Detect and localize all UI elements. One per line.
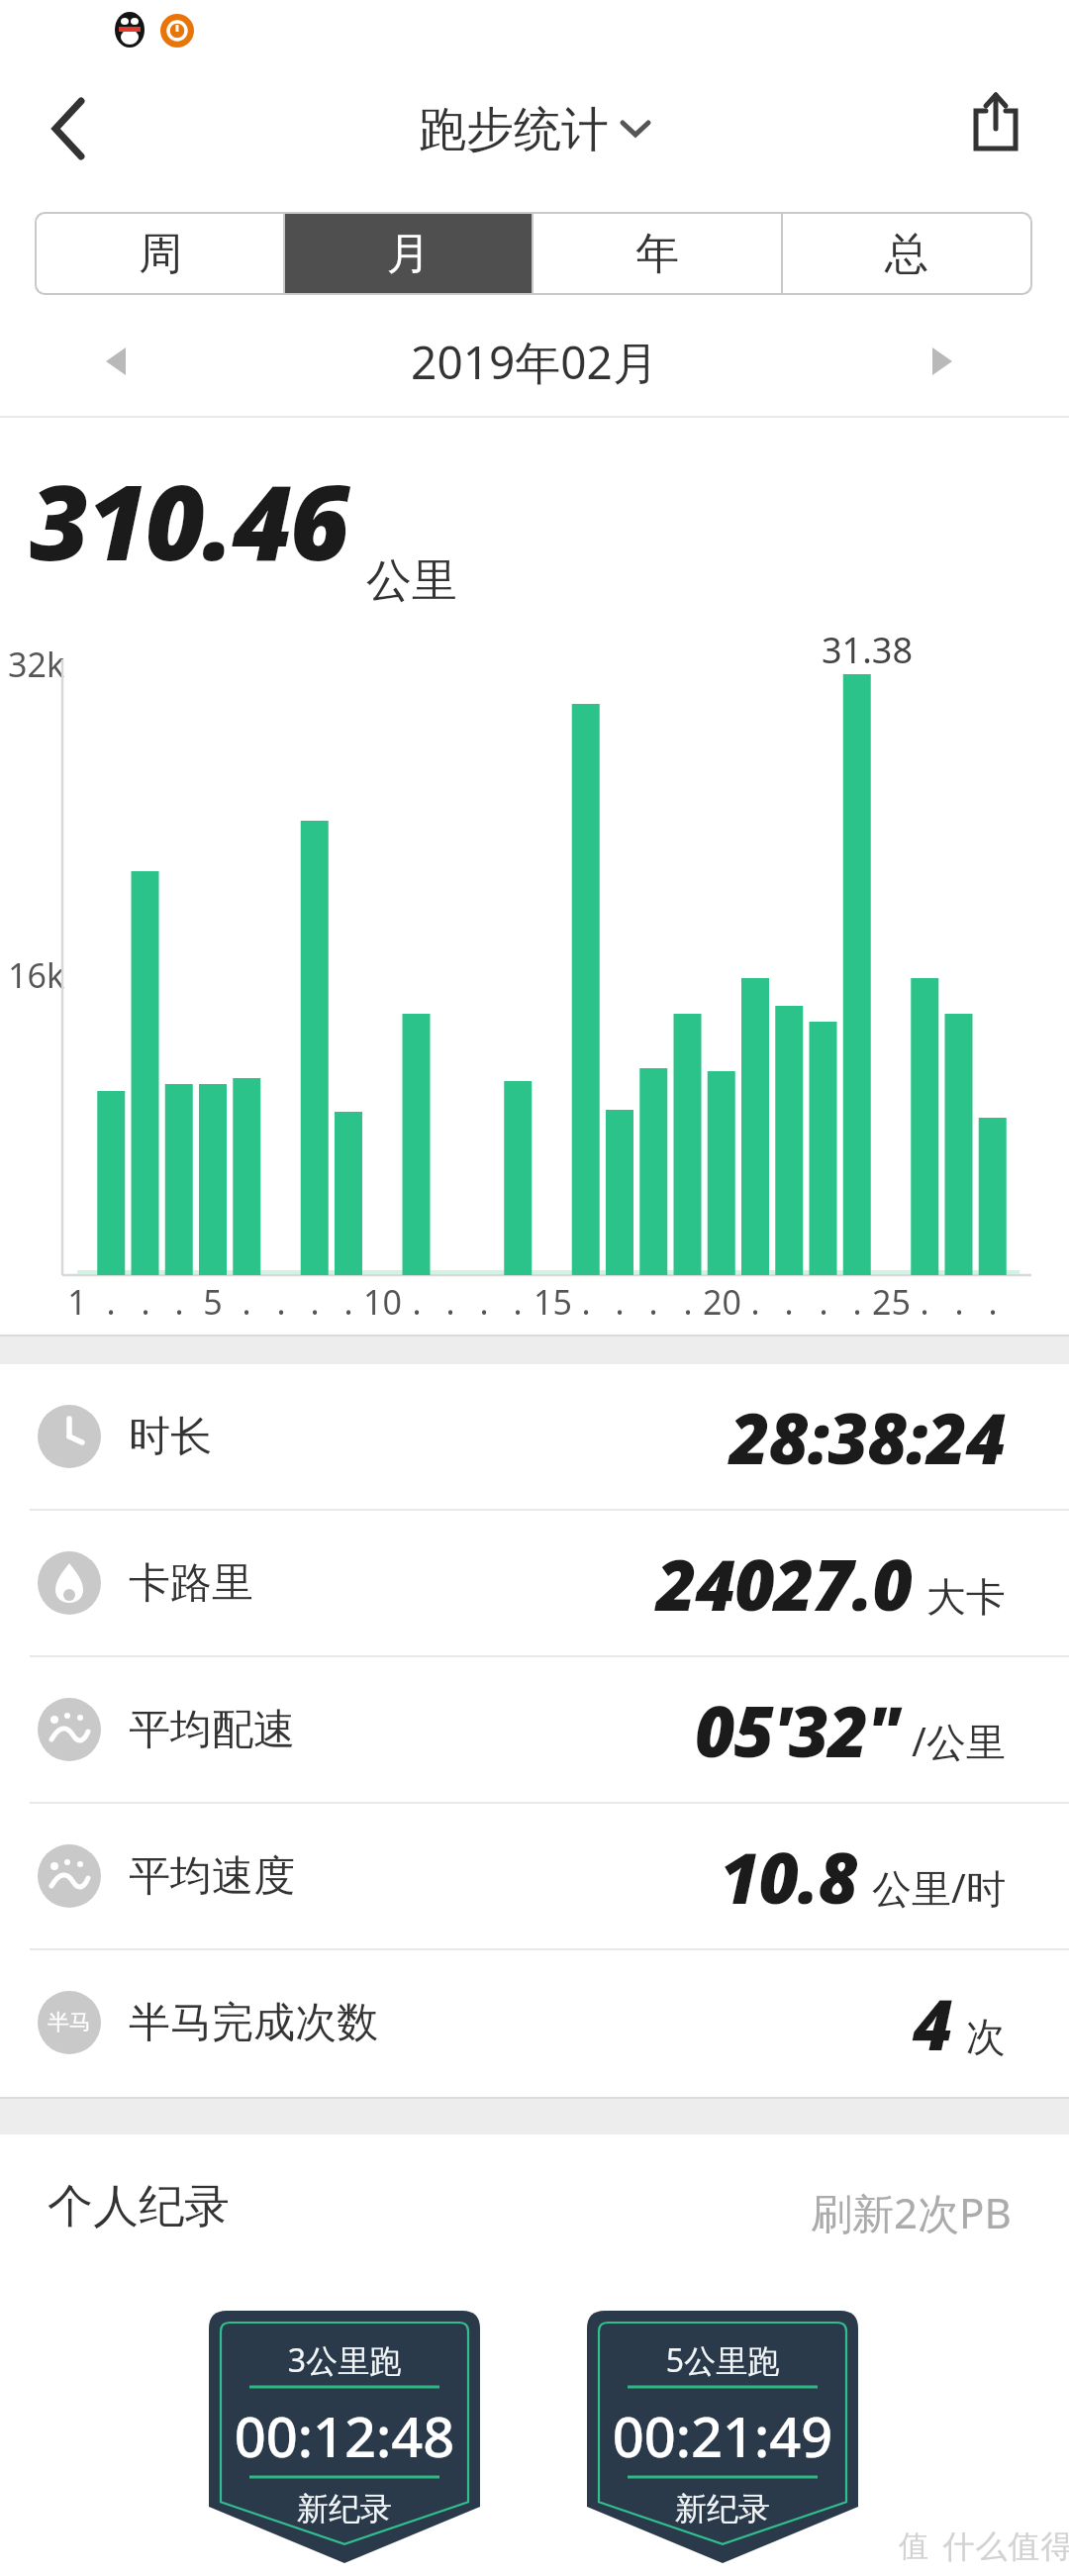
staticText: .: [106, 1279, 116, 1323]
staticText: .: [343, 1279, 353, 1323]
staticText: 新纪录: [209, 2489, 480, 2528]
staticText: .: [784, 1279, 794, 1323]
button[interactable]: 卡路里: [0, 1511, 1069, 1655]
staticText: 31.38: [822, 626, 914, 674]
staticText: 25: [872, 1279, 911, 1323]
staticText: 月: [387, 227, 431, 281]
staticText: 5公里跑: [587, 2338, 858, 2382]
staticText: 跑步统计: [419, 100, 609, 159]
staticText: .: [276, 1279, 286, 1323]
button[interactable]: 半马: [0, 1950, 1069, 2095]
staticText: .: [310, 1279, 320, 1323]
staticText: 时长: [129, 1411, 212, 1463]
staticText: .: [615, 1279, 625, 1323]
button[interactable]: 3公里跑: [209, 2311, 480, 2576]
staticText: .: [479, 1279, 489, 1323]
button[interactable]: 总: [783, 214, 1030, 293]
staticText: 4: [913, 1976, 952, 2070]
button[interactable]: 跑步统计: [0, 95, 1069, 164]
staticText: 00:21:49: [587, 2398, 858, 2473]
staticText: .: [445, 1279, 455, 1323]
staticText: 310.46: [30, 450, 348, 591]
staticText: 总: [885, 227, 928, 281]
staticText: .: [174, 1279, 184, 1323]
staticText: /公里: [912, 1714, 1006, 1768]
staticText: 3公里跑: [209, 2338, 480, 2382]
staticText: .: [412, 1279, 422, 1323]
staticText: .: [819, 1279, 828, 1323]
staticText: 24027.0: [656, 1536, 913, 1631]
staticText: 刷新2次PB: [811, 2184, 1012, 2240]
staticText: 平均速度: [129, 1850, 295, 1903]
staticText: .: [141, 1279, 150, 1323]
staticText: 周: [139, 227, 182, 281]
staticText: .: [954, 1279, 964, 1323]
button[interactable]: 年: [534, 214, 781, 293]
button[interactable]: 周: [37, 214, 283, 293]
button[interactable]: 月: [285, 214, 532, 293]
staticText: 16k: [8, 952, 65, 998]
button[interactable]: 时长: [0, 1364, 1069, 1509]
button[interactable]: 平均配速: [0, 1657, 1069, 1802]
button[interactable]: [960, 87, 1035, 162]
staticText: 5: [203, 1279, 223, 1323]
staticText: .: [648, 1279, 658, 1323]
staticText: 个人纪录: [48, 2178, 230, 2235]
staticText: 大卡: [926, 1572, 1006, 1622]
staticText: .: [513, 1279, 523, 1323]
staticText: 年: [635, 227, 679, 281]
staticText: .: [683, 1279, 693, 1323]
button[interactable]: [30, 89, 109, 168]
button[interactable]: 平均速度: [0, 1804, 1069, 1948]
staticText: 公里/时: [872, 1860, 1006, 1915]
staticText: .: [242, 1279, 251, 1323]
staticText: .: [581, 1279, 591, 1323]
staticText: 半马: [48, 2009, 91, 2036]
staticText: 2019年02月: [0, 331, 1069, 393]
staticText: .: [988, 1279, 998, 1323]
staticText: 20: [703, 1279, 741, 1323]
button[interactable]: [928, 347, 954, 377]
staticText: 00:12:48: [209, 2398, 480, 2473]
staticText: 卡路里: [129, 1557, 253, 1610]
staticText: 平均配速: [129, 1704, 295, 1756]
staticText: 新纪录: [587, 2489, 858, 2528]
staticText: 10.8: [720, 1830, 858, 1924]
staticText: 28:38:24: [729, 1390, 1006, 1484]
staticText: 公里: [366, 552, 457, 610]
staticText: 1: [67, 1279, 87, 1323]
button[interactable]: [104, 347, 130, 377]
staticText: 值: [899, 2527, 928, 2565]
staticText: 什么值得买: [942, 2526, 1069, 2566]
staticText: .: [852, 1279, 862, 1323]
staticText: 半马完成次数: [129, 1997, 378, 2049]
staticText: 05'32": [695, 1683, 898, 1777]
staticText: 15: [534, 1279, 572, 1323]
staticText: 32k: [8, 642, 65, 687]
button[interactable]: 5公里跑: [587, 2311, 858, 2576]
staticText: .: [750, 1279, 760, 1323]
staticText: .: [920, 1279, 929, 1323]
staticText: 10: [363, 1279, 402, 1323]
staticText: 次: [966, 2012, 1006, 2061]
